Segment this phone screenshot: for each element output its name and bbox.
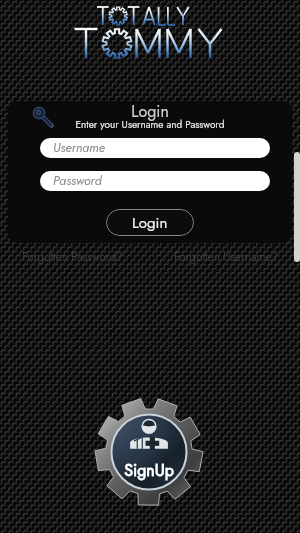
staticText: Login: [132, 212, 168, 234]
button[interactable]: Sign Up: [95, 398, 203, 506]
staticText: SignUp: [95, 459, 203, 482]
button[interactable]: Forgotten Password?: [22, 249, 123, 266]
staticText: Password: [53, 172, 102, 190]
staticText: Login: [8, 101, 292, 123]
button[interactable]: Login: [106, 209, 194, 236]
button[interactable]: Forgotten Username?: [174, 249, 278, 266]
staticText: Username: [53, 139, 105, 157]
button[interactable]: Password: [40, 171, 270, 191]
button[interactable]: Username: [40, 138, 270, 158]
staticText: Enter your Username and Password: [8, 117, 292, 131]
